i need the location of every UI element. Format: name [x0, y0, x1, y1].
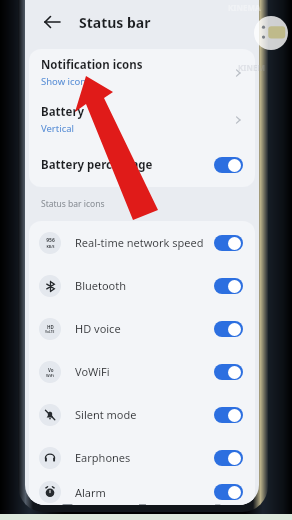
button[interactable]: Toggle on [214, 364, 243, 380]
button[interactable]: Toggle on [214, 157, 243, 173]
staticText: Battery [41, 104, 85, 120]
button[interactable]: Toggle on [214, 235, 243, 251]
staticText: Notification icons [41, 57, 143, 73]
button[interactable]: HD [29, 307, 255, 350]
button[interactable]: Notification icons [29, 49, 255, 96]
button[interactable]: Toggle on [214, 484, 243, 500]
staticText: Vo [48, 367, 54, 373]
staticText: VoLTE [45, 330, 55, 334]
staticText: VoWiFi [75, 364, 214, 379]
staticText: Earphones [75, 450, 214, 465]
button[interactable]: Earphones [29, 436, 255, 479]
staticText: Status bar [79, 13, 151, 32]
staticText: Show icon [41, 75, 87, 88]
button[interactable]: Back [37, 7, 67, 37]
button[interactable]: Battery [29, 96, 255, 143]
button[interactable]: Toggle on [214, 278, 243, 294]
staticText: KB/S [46, 244, 55, 249]
button[interactable]: 956 [29, 221, 255, 264]
staticText: Alarm [75, 485, 214, 500]
staticText: 956 [46, 237, 55, 244]
button[interactable]: Silent mode [29, 393, 255, 436]
button[interactable]: Toggle on [214, 321, 243, 337]
button[interactable]: Bluetooth [29, 264, 255, 307]
button[interactable]: Alarm [29, 479, 255, 505]
button[interactable]: Battery percentage [29, 143, 255, 187]
staticText: Battery percentage [41, 157, 214, 173]
staticText: Silent mode [75, 407, 214, 422]
staticText: Vertical [41, 122, 75, 135]
staticText: WiFi [46, 373, 55, 378]
staticText: KINEMA [228, 2, 261, 13]
staticText: HD voice [75, 321, 214, 336]
staticText: KINEM [238, 62, 265, 73]
button[interactable]: Toggle on [214, 407, 243, 423]
staticText: Status bar icons [41, 198, 105, 210]
staticText: Bluetooth [75, 278, 214, 293]
staticText: HD [47, 324, 54, 330]
button[interactable]: Toggle on [214, 450, 243, 466]
staticText: Real-time network speed [75, 235, 214, 250]
button[interactable]: Vo [29, 350, 255, 393]
